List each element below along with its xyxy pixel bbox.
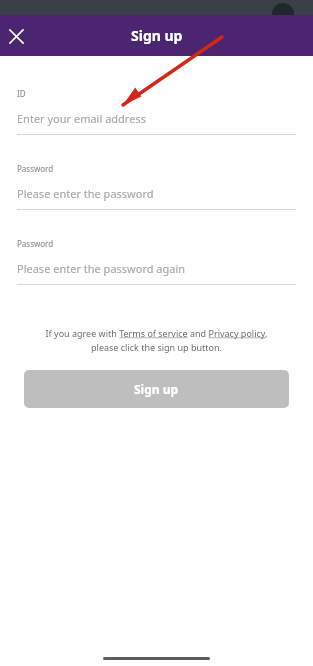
staticText: Password: [17, 163, 54, 174]
staticText: Sign up: [131, 26, 183, 45]
button[interactable]: If you agree with Terms of service and P…: [35, 327, 278, 354]
staticText: If you agree with Terms of service and P…: [35, 327, 278, 354]
button[interactable]: Close: [4, 24, 28, 48]
staticText: Sign up: [134, 381, 179, 397]
button[interactable]: ID: [17, 88, 296, 135]
staticText: Please enter the password: [17, 186, 154, 201]
staticText: Please enter the password again: [17, 261, 186, 276]
staticText: Enter your email address: [17, 111, 146, 126]
button[interactable]: Password: [17, 163, 296, 210]
button[interactable]: Sign up: [24, 370, 289, 408]
staticText: ID: [17, 88, 26, 99]
button[interactable]: Password: [17, 238, 296, 285]
staticText: Password: [17, 238, 54, 249]
